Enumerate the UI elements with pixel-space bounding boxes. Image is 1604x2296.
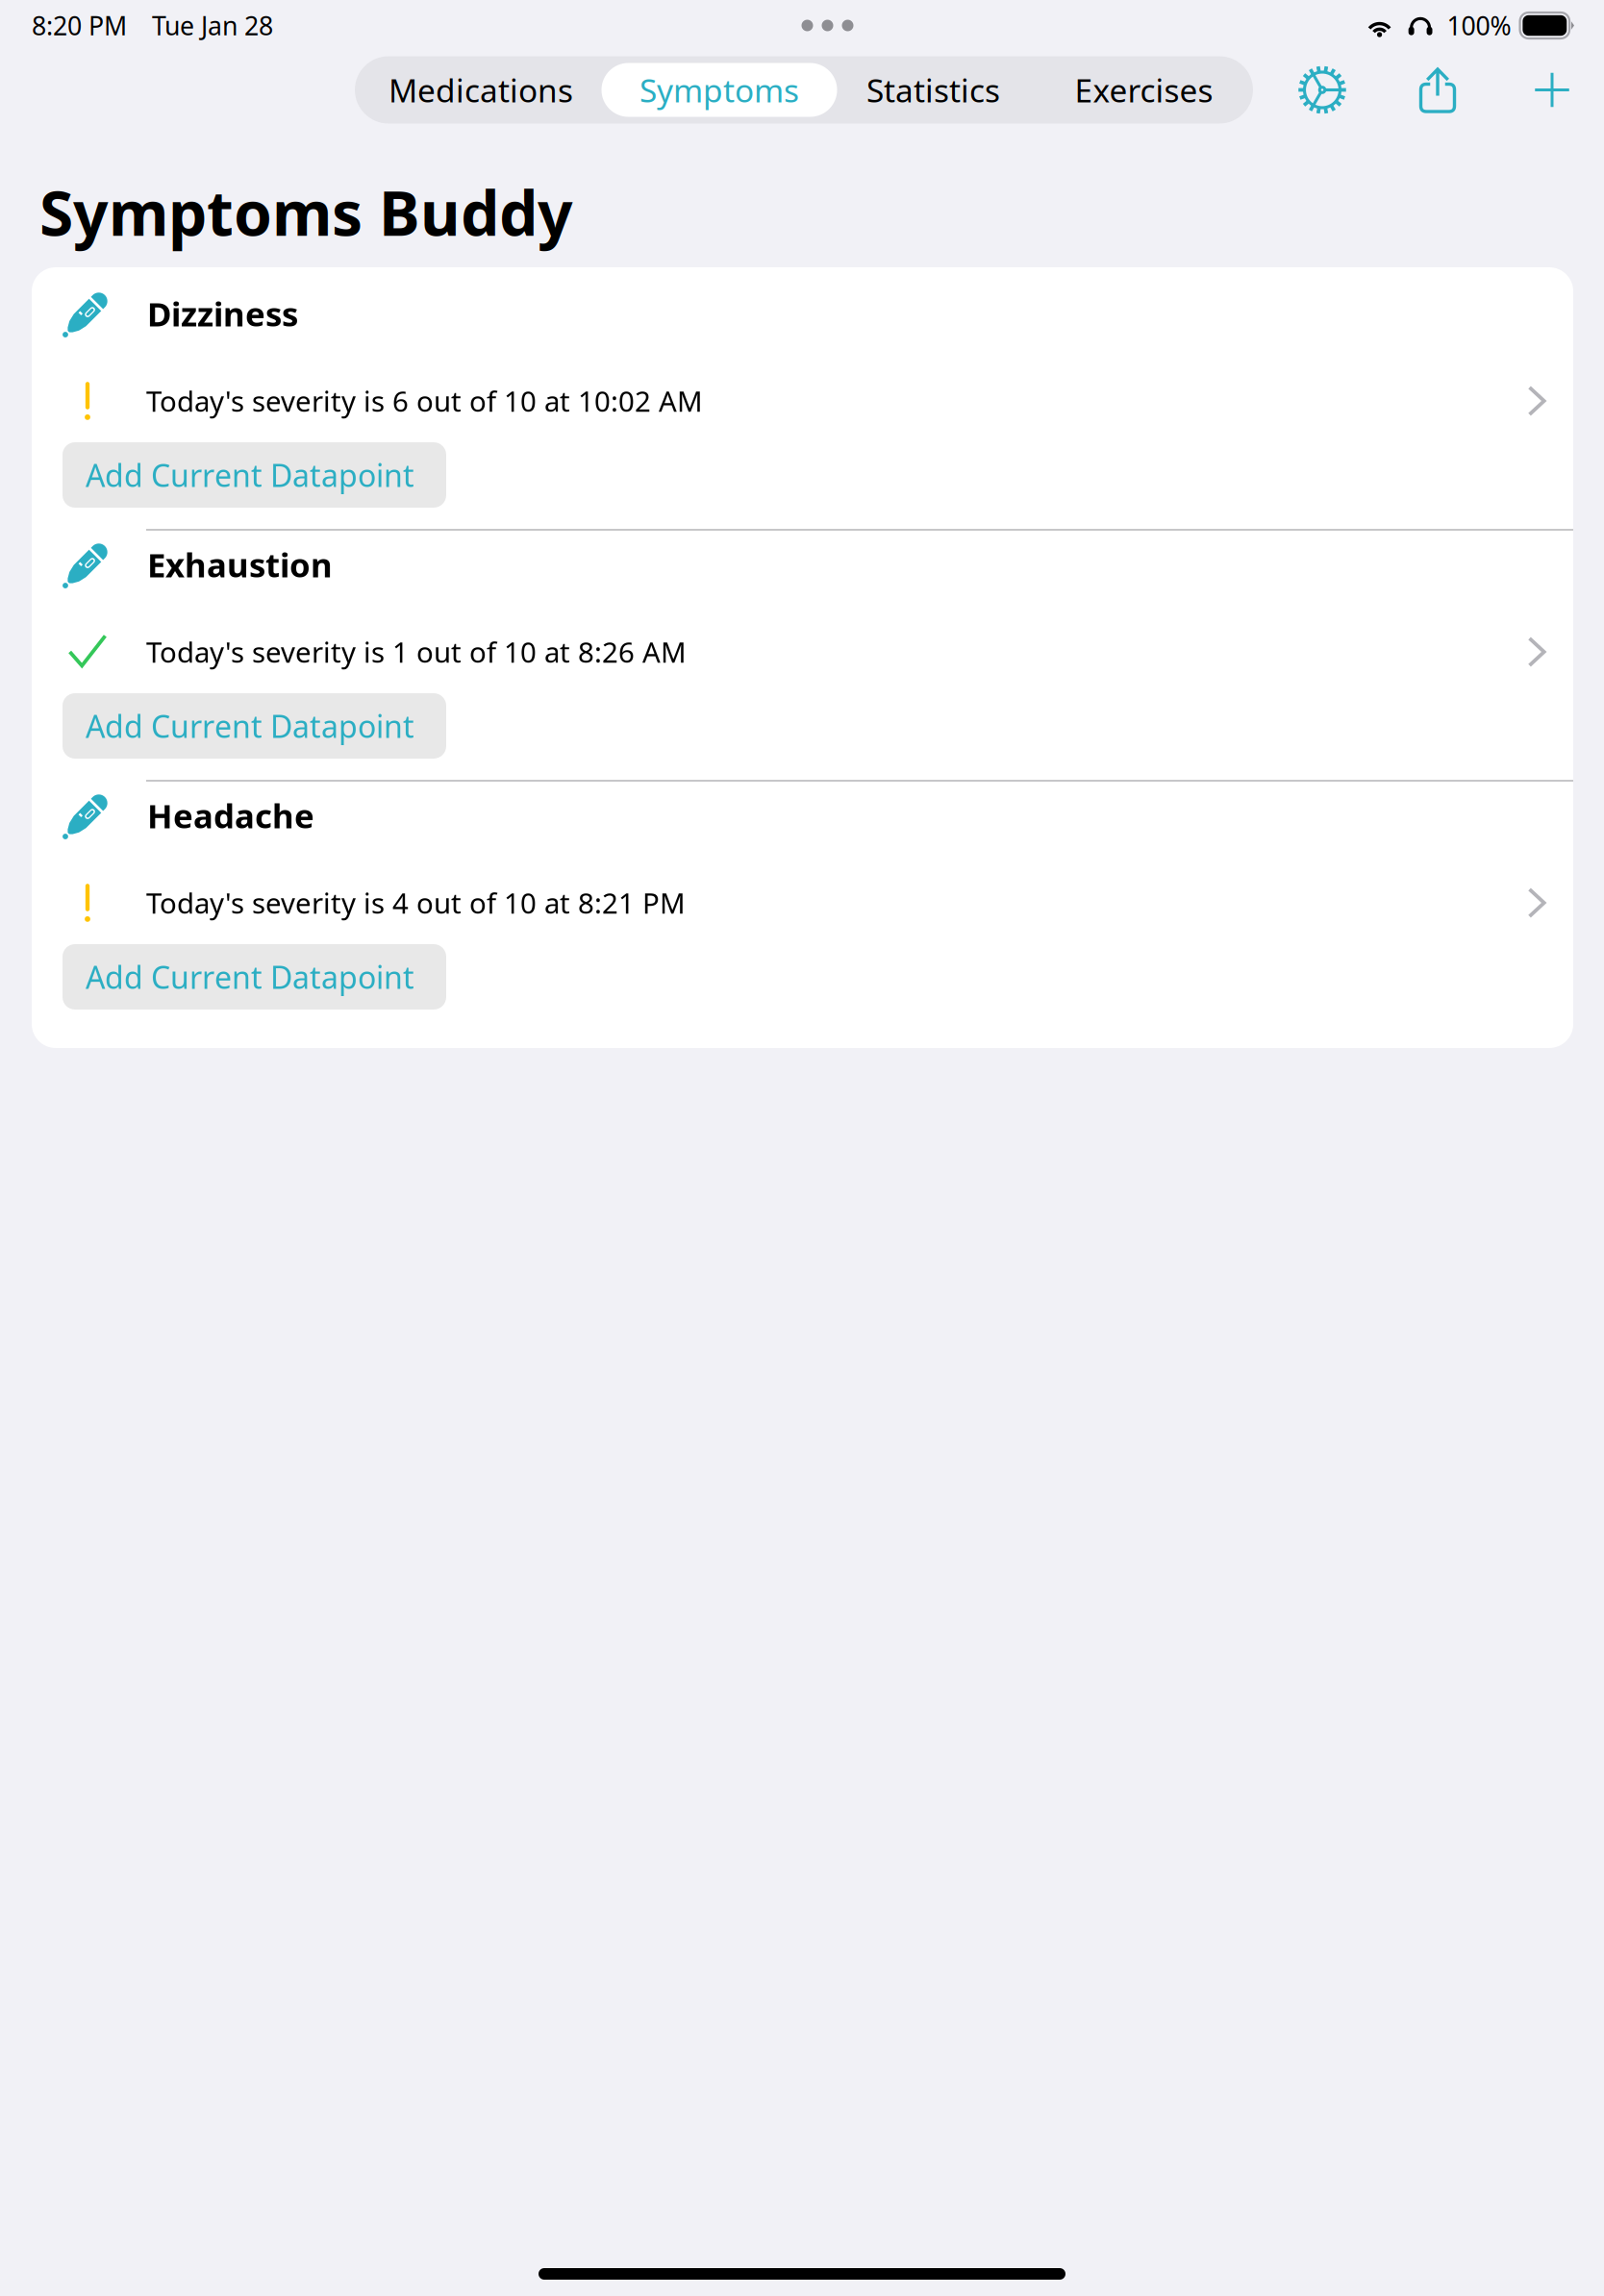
button[interactable]: Statistics [832, 56, 1035, 124]
staticText: Today's severity is 1 out of 10 at 8:26 … [146, 633, 687, 671]
button[interactable]: Settings [1298, 66, 1346, 114]
staticText: Today's severity is 4 out of 10 at 8:21 … [146, 884, 686, 922]
staticText: 8:20 PM [32, 8, 127, 42]
button[interactable]: Add Current Datapoint [63, 442, 446, 508]
button[interactable]: Today's severity is 1 out of 10 at 8:26 … [32, 588, 1573, 673]
button[interactable]: Add [1529, 67, 1575, 113]
staticText: Medications [388, 69, 573, 111]
staticText: Symptoms Buddy [39, 171, 573, 253]
staticText: Tue Jan 28 [152, 8, 273, 42]
staticText: Add Current Datapoint [86, 956, 414, 997]
button[interactable]: Today's severity is 4 out of 10 at 8:21 … [32, 839, 1573, 924]
button[interactable]: Share [1414, 66, 1462, 114]
staticText: Dizziness [147, 291, 298, 336]
button[interactable]: Medications [355, 56, 607, 124]
staticText: Add Current Datapoint [86, 705, 414, 746]
staticText: Statistics [866, 69, 1000, 111]
staticText: Headache [147, 793, 314, 837]
button[interactable]: Symptoms [607, 56, 832, 124]
staticText: Add Current Datapoint [86, 454, 414, 495]
staticText: 100% [1447, 8, 1511, 42]
button[interactable]: Today's severity is 6 out of 10 at 10:02… [32, 337, 1573, 422]
button[interactable]: Exercises [1035, 56, 1253, 124]
staticText: Exhaustion [147, 542, 333, 586]
staticText: Exercises [1075, 69, 1213, 111]
button[interactable]: Add Current Datapoint [63, 944, 446, 1010]
staticText: Symptoms [639, 69, 799, 111]
staticText: Today's severity is 6 out of 10 at 10:02… [146, 382, 703, 420]
button[interactable]: Add Current Datapoint [63, 693, 446, 759]
